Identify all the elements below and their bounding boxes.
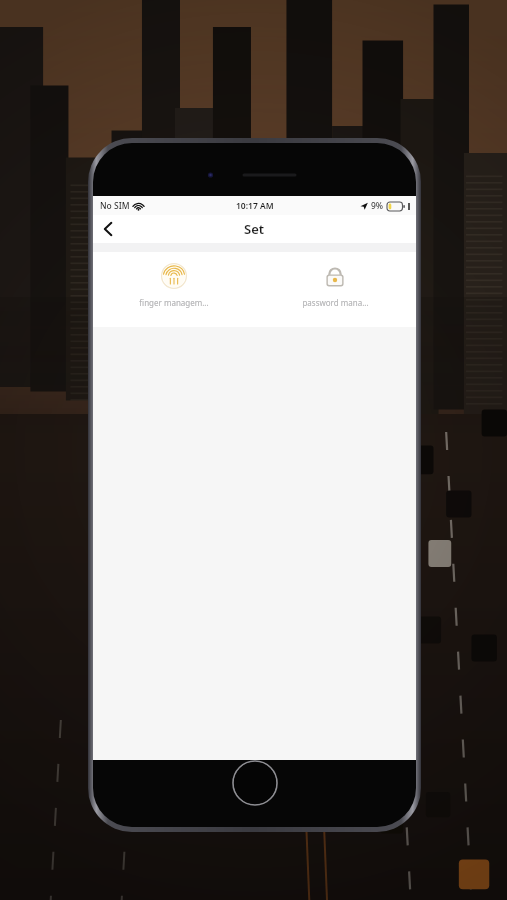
button[interactable]: Fingerprint management	[93, 252, 254, 327]
other: Fingerprint management	[161, 263, 187, 289]
staticText: finger managem...	[139, 297, 209, 308]
button[interactable]: Password management	[254, 252, 416, 327]
staticText: Set	[244, 220, 265, 238]
staticText: 9%	[371, 200, 384, 212]
button[interactable]: Back	[93, 215, 123, 243]
staticText: No SIM	[100, 200, 130, 212]
staticText: password mana...	[302, 297, 369, 308]
other: Password management	[322, 263, 348, 289]
staticText: 10:17 AM	[236, 200, 274, 212]
